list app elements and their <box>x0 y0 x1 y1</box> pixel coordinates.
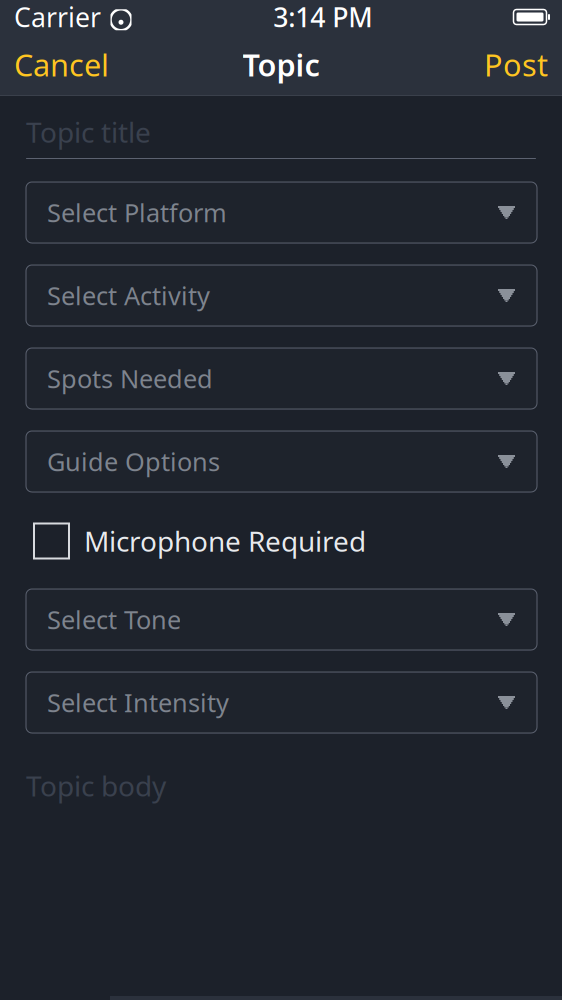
staticText: Select Tone <box>47 603 181 636</box>
staticText: Topic body <box>26 767 166 804</box>
button[interactable]: Guide Options <box>26 431 537 492</box>
button[interactable]: Cancel <box>0 35 123 94</box>
button[interactable]: Select Intensity <box>26 672 537 733</box>
staticText: Select Platform <box>47 196 227 229</box>
button[interactable]: Select Tone <box>26 589 537 650</box>
staticText: Select Activity <box>47 279 210 312</box>
button[interactable]: Post <box>470 35 562 94</box>
button[interactable]: Select Activity <box>26 265 537 326</box>
staticText: Microphone Required <box>84 522 366 560</box>
button[interactable]: Microphone Required <box>34 521 537 561</box>
staticText: Spots Needed <box>47 362 213 395</box>
staticText: 3:14 PM <box>273 0 372 35</box>
staticText: Topic title <box>26 113 151 151</box>
button[interactable]: Select Platform <box>26 182 537 243</box>
staticText: Post <box>484 44 548 85</box>
staticText: Select Intensity <box>47 686 229 719</box>
button[interactable]: Spots Needed <box>26 348 537 409</box>
staticText: Carrier <box>14 0 101 35</box>
staticText: Cancel <box>14 44 109 85</box>
staticText: Guide Options <box>47 445 220 478</box>
staticText: Topic <box>242 44 319 85</box>
